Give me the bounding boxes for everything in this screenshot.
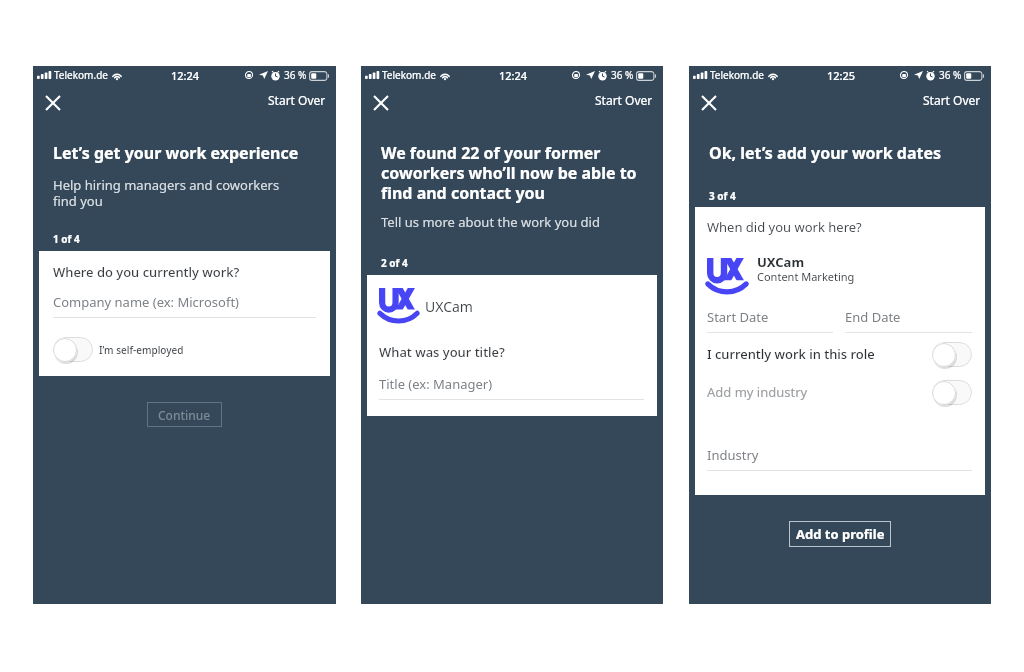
button[interactable]: Start Over: [591, 89, 657, 111]
button[interactable]: Add to profile: [789, 521, 891, 547]
staticText: 1 of 4: [53, 232, 80, 246]
staticText: I currently work in this role: [707, 345, 875, 363]
staticText: We found 22 of your former coworkers who…: [381, 142, 637, 203]
staticText: What was your title?: [379, 343, 505, 361]
staticText: UXCam: [757, 253, 805, 271]
staticText: 3 of 4: [709, 189, 736, 203]
staticText: I’m self-employed: [99, 343, 184, 357]
button[interactable]: Start Date: [707, 304, 833, 333]
button[interactable]: Close: [696, 90, 721, 115]
button[interactable]: End Date: [845, 304, 972, 333]
button[interactable]: Close: [368, 90, 393, 115]
button[interactable]: Add my industry: [707, 377, 972, 407]
staticText: 12:25: [827, 68, 856, 83]
staticText: Where do you currently work?: [53, 263, 240, 281]
staticText: 12:24: [171, 68, 200, 83]
button[interactable]: Continue: [147, 402, 222, 427]
staticText: 12:24: [499, 68, 528, 83]
staticText: Content Marketing: [757, 269, 855, 284]
button[interactable]: Company name (ex: Microsoft): [53, 289, 316, 318]
button[interactable]: Start Over: [919, 89, 985, 111]
staticText: Industry: [707, 446, 759, 464]
staticText: Start Date: [707, 308, 769, 326]
staticText: Ok, let’s add your work dates: [709, 142, 942, 164]
button[interactable]: I currently work in this role: [707, 339, 972, 369]
button[interactable]: Industry: [707, 442, 972, 471]
staticText: End Date: [845, 308, 901, 326]
staticText: 36 %: [611, 68, 634, 82]
staticText: Telekom.de: [54, 68, 108, 82]
staticText: Telekom.de: [382, 68, 436, 82]
staticText: Tell us more about the work you did: [381, 213, 600, 231]
staticText: UXCam: [425, 297, 473, 316]
staticText: 36 %: [284, 68, 307, 82]
button[interactable]: I’m self-employed: [53, 337, 184, 362]
staticText: Company name (ex: Microsoft): [53, 293, 239, 311]
staticText: Continue: [158, 407, 211, 423]
staticText: Add to profile: [796, 525, 885, 543]
staticText: 2 of 4: [381, 256, 408, 270]
staticText: Start Over: [595, 92, 653, 108]
button[interactable]: Start Over: [264, 89, 330, 111]
staticText: Telekom.de: [710, 68, 764, 82]
staticText: Title (ex: Manager): [379, 375, 493, 393]
staticText: Start Over: [268, 92, 326, 108]
staticText: Add my industry: [707, 383, 808, 401]
staticText: Let’s get your work experience: [53, 142, 299, 164]
staticText: When did you work here?: [707, 218, 862, 236]
staticText: 36 %: [939, 68, 962, 82]
button[interactable]: Close: [40, 90, 65, 115]
button[interactable]: Title (ex: Manager): [379, 371, 644, 400]
staticText: Help hiring managers and coworkers find …: [53, 176, 280, 209]
staticText: Start Over: [923, 92, 981, 108]
